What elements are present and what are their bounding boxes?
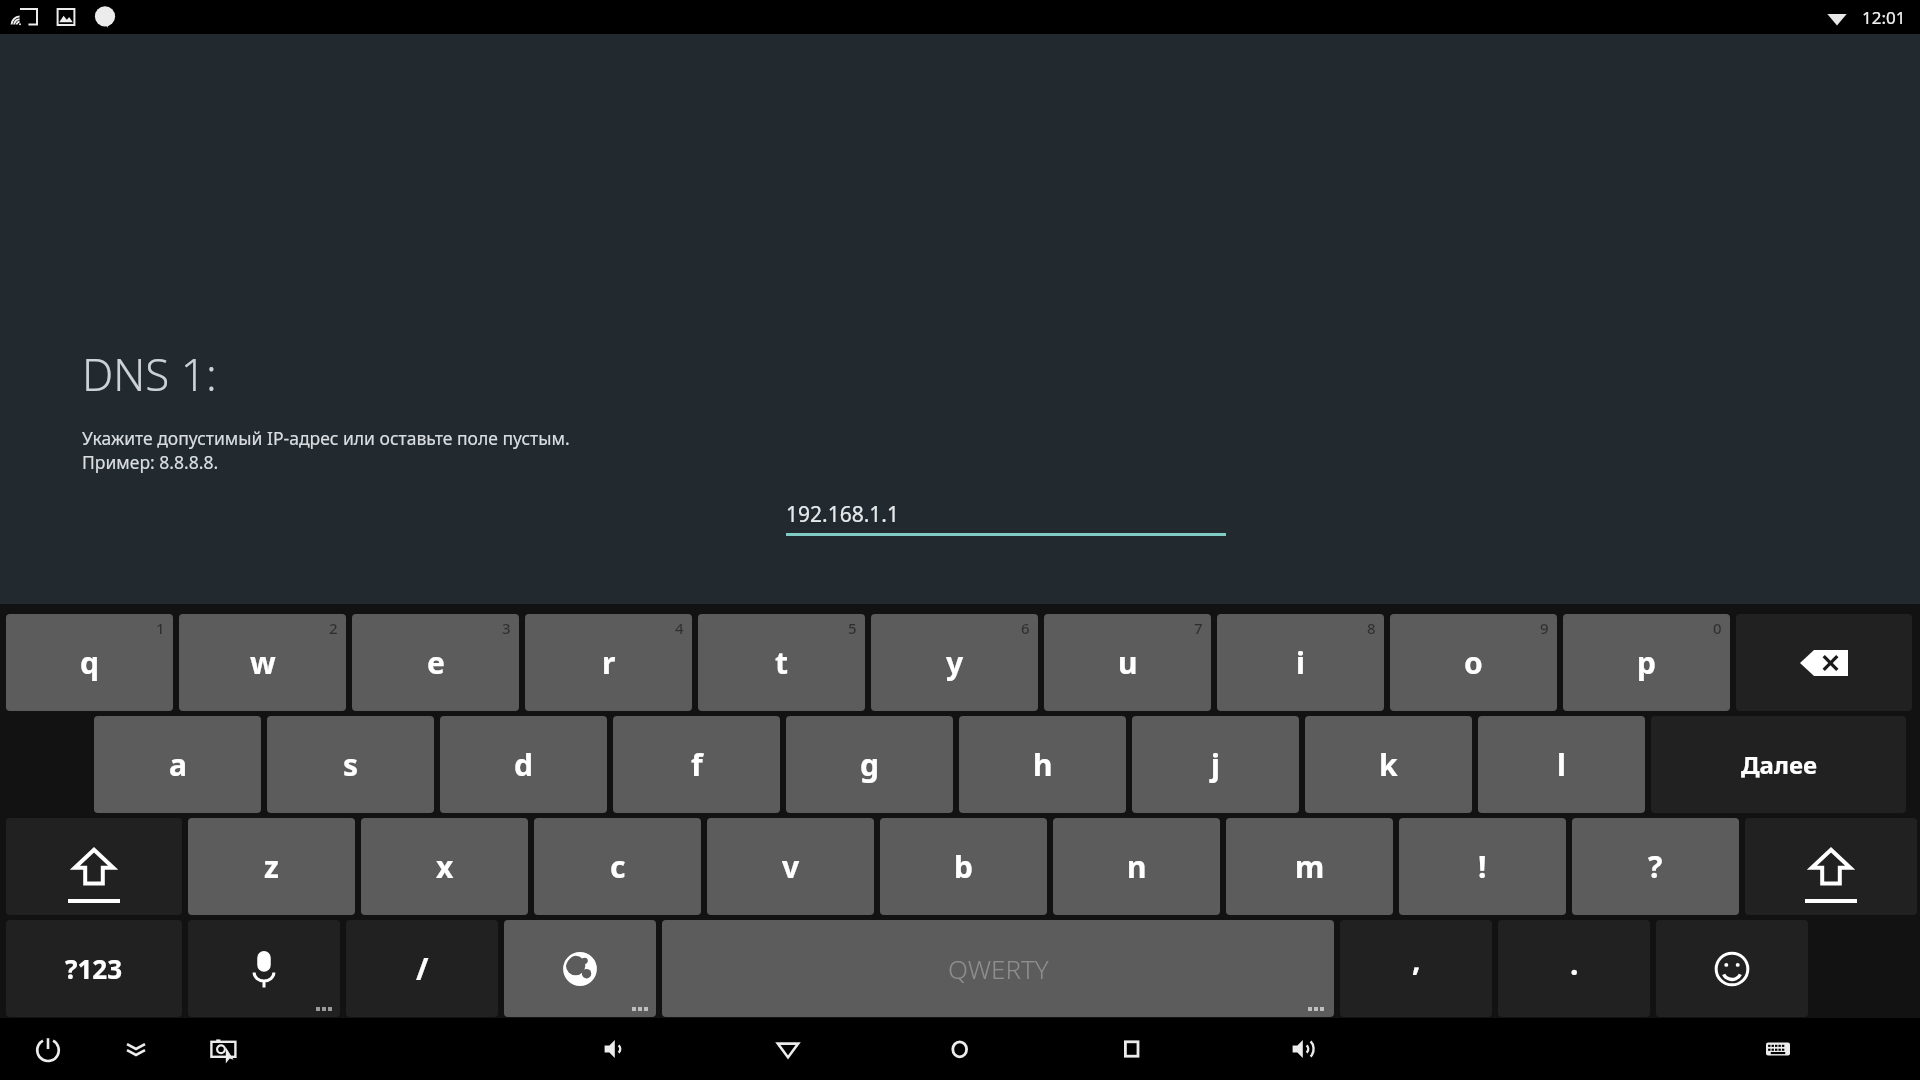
button[interactable]: s <box>267 716 434 813</box>
button[interactable]: Screenshot <box>200 1025 248 1073</box>
staticText: i <box>1296 642 1305 683</box>
button[interactable]: 7 <box>1044 614 1211 711</box>
button[interactable]: 9 <box>1390 614 1557 711</box>
button[interactable]: . <box>1498 920 1650 1017</box>
staticText: / <box>416 948 429 989</box>
staticText: 5 <box>848 618 857 638</box>
staticText: 12:01 <box>1862 6 1906 29</box>
staticText: u <box>1118 642 1138 683</box>
staticText: b <box>954 846 973 887</box>
button[interactable]: ? <box>1572 818 1739 915</box>
staticText: 2 <box>329 618 338 638</box>
button[interactable]: 192.168.1.1 <box>786 500 1226 536</box>
button[interactable]: / <box>346 920 498 1017</box>
button[interactable]: Volume down <box>592 1025 640 1073</box>
staticText: y <box>946 642 964 683</box>
button[interactable]: m <box>1226 818 1393 915</box>
button[interactable]: Shift <box>1745 818 1917 915</box>
button[interactable]: 6 <box>871 614 1038 711</box>
button[interactable]: h <box>959 716 1126 813</box>
button[interactable]: Change language <box>504 920 656 1017</box>
button[interactable]: Backspace <box>1736 614 1912 711</box>
staticText: 4 <box>675 618 684 638</box>
button[interactable]: 2 <box>179 614 346 711</box>
button[interactable]: j <box>1132 716 1299 813</box>
button[interactable]: Keyboard <box>1754 1025 1802 1073</box>
button[interactable]: Back <box>764 1025 812 1073</box>
staticText: r <box>602 642 616 683</box>
staticText: 3 <box>502 618 511 638</box>
button[interactable]: ?123 <box>6 920 182 1017</box>
staticText: g <box>860 744 879 785</box>
staticText: s <box>343 744 359 785</box>
button[interactable]: l <box>1478 716 1645 813</box>
staticText: QWERTY <box>948 951 1049 986</box>
staticText: 1 <box>156 618 165 638</box>
staticText: z <box>264 846 279 887</box>
button[interactable]: 3 <box>352 614 519 711</box>
staticText: k <box>1379 744 1398 785</box>
button[interactable]: Volume up <box>1280 1025 1328 1073</box>
button[interactable]: Recents <box>1108 1025 1156 1073</box>
button[interactable]: f <box>613 716 780 813</box>
staticText: Укажите допустимый IP-адрес или оставьте… <box>82 426 570 450</box>
staticText: 8 <box>1367 618 1376 638</box>
staticText: m <box>1295 846 1325 887</box>
button[interactable]: 5 <box>698 614 865 711</box>
staticText: d <box>514 744 533 785</box>
button[interactable]: 0 <box>1563 614 1730 711</box>
button[interactable]: k <box>1305 716 1472 813</box>
staticText: ?123 <box>65 951 123 986</box>
button[interactable]: Collapse <box>112 1025 160 1073</box>
button[interactable]: b <box>880 818 1047 915</box>
button[interactable]: Voice input <box>188 920 340 1017</box>
staticText: q <box>80 642 99 683</box>
button[interactable]: Shift <box>6 818 182 915</box>
staticText: 7 <box>1194 618 1203 638</box>
button[interactable]: Space <box>662 920 1334 1017</box>
staticText: l <box>1557 744 1566 785</box>
staticText: w <box>250 642 276 683</box>
staticText: 0 <box>1713 618 1722 638</box>
staticText: p <box>1637 642 1656 683</box>
staticText: 9 <box>1540 618 1549 638</box>
staticText: . <box>1570 943 1579 984</box>
staticText: DNS 1: <box>82 344 217 404</box>
staticText: e <box>427 642 445 683</box>
button[interactable]: g <box>786 716 953 813</box>
staticText: ! <box>1478 846 1487 887</box>
button[interactable]: x <box>361 818 528 915</box>
staticText: a <box>169 744 187 785</box>
staticText: f <box>691 744 703 785</box>
button[interactable]: c <box>534 818 701 915</box>
button[interactable]: d <box>440 716 607 813</box>
staticText: Пример: 8.8.8.8. <box>82 450 219 474</box>
button[interactable]: Далее <box>1651 716 1906 813</box>
staticText: ? <box>1648 846 1663 887</box>
staticText: h <box>1033 744 1053 785</box>
button[interactable]: , <box>1340 920 1492 1017</box>
staticText: , <box>1412 939 1421 980</box>
button[interactable]: Emoji <box>1656 920 1808 1017</box>
staticText: n <box>1127 846 1147 887</box>
button[interactable]: z <box>188 818 355 915</box>
button[interactable]: Home <box>936 1025 984 1073</box>
button[interactable]: v <box>707 818 874 915</box>
button[interactable]: Power <box>24 1025 72 1073</box>
staticText: o <box>1464 642 1483 683</box>
button[interactable]: a <box>94 716 261 813</box>
button[interactable]: ! <box>1399 818 1566 915</box>
staticText: v <box>782 846 800 887</box>
staticText: j <box>1211 744 1220 785</box>
button[interactable]: 8 <box>1217 614 1384 711</box>
staticText: Далее <box>1741 748 1817 781</box>
button[interactable]: n <box>1053 818 1220 915</box>
staticText: 192.168.1.1 <box>786 500 899 529</box>
staticText: t <box>775 642 789 683</box>
button[interactable]: 1 <box>6 614 173 711</box>
staticText: x <box>436 846 454 887</box>
staticText: c <box>610 846 626 887</box>
staticText: 6 <box>1021 618 1030 638</box>
button[interactable]: 4 <box>525 614 692 711</box>
